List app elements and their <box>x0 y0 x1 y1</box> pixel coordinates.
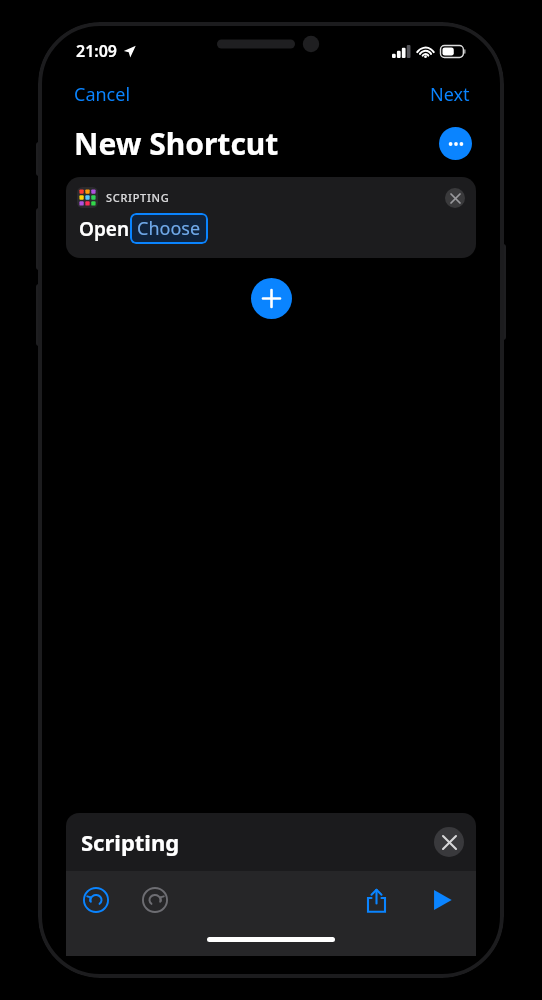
staticText: Cancel <box>74 82 131 107</box>
button[interactable]: Remove action <box>445 188 465 208</box>
button[interactable]: Add action <box>251 278 292 319</box>
button[interactable]: Close <box>434 827 464 857</box>
button[interactable]: Undo <box>78 882 114 918</box>
staticText: Scripting <box>81 827 180 857</box>
staticText: SCRIPTING <box>106 190 170 205</box>
button[interactable]: Run shortcut <box>424 882 460 918</box>
button[interactable]: Choose <box>130 213 208 244</box>
staticText: Choose <box>137 216 201 241</box>
staticText: Open <box>79 216 130 242</box>
button[interactable]: Cancel <box>46 78 159 111</box>
staticText: Next <box>430 82 470 107</box>
button[interactable]: More options <box>439 127 472 160</box>
button[interactable]: Redo <box>137 882 173 918</box>
button[interactable]: SCRIPTING <box>66 177 476 258</box>
button[interactable]: Share <box>358 882 394 918</box>
staticText: 21:09 <box>76 40 118 62</box>
button[interactable]: Next <box>404 78 496 111</box>
staticText: New Shortcut <box>74 123 279 164</box>
